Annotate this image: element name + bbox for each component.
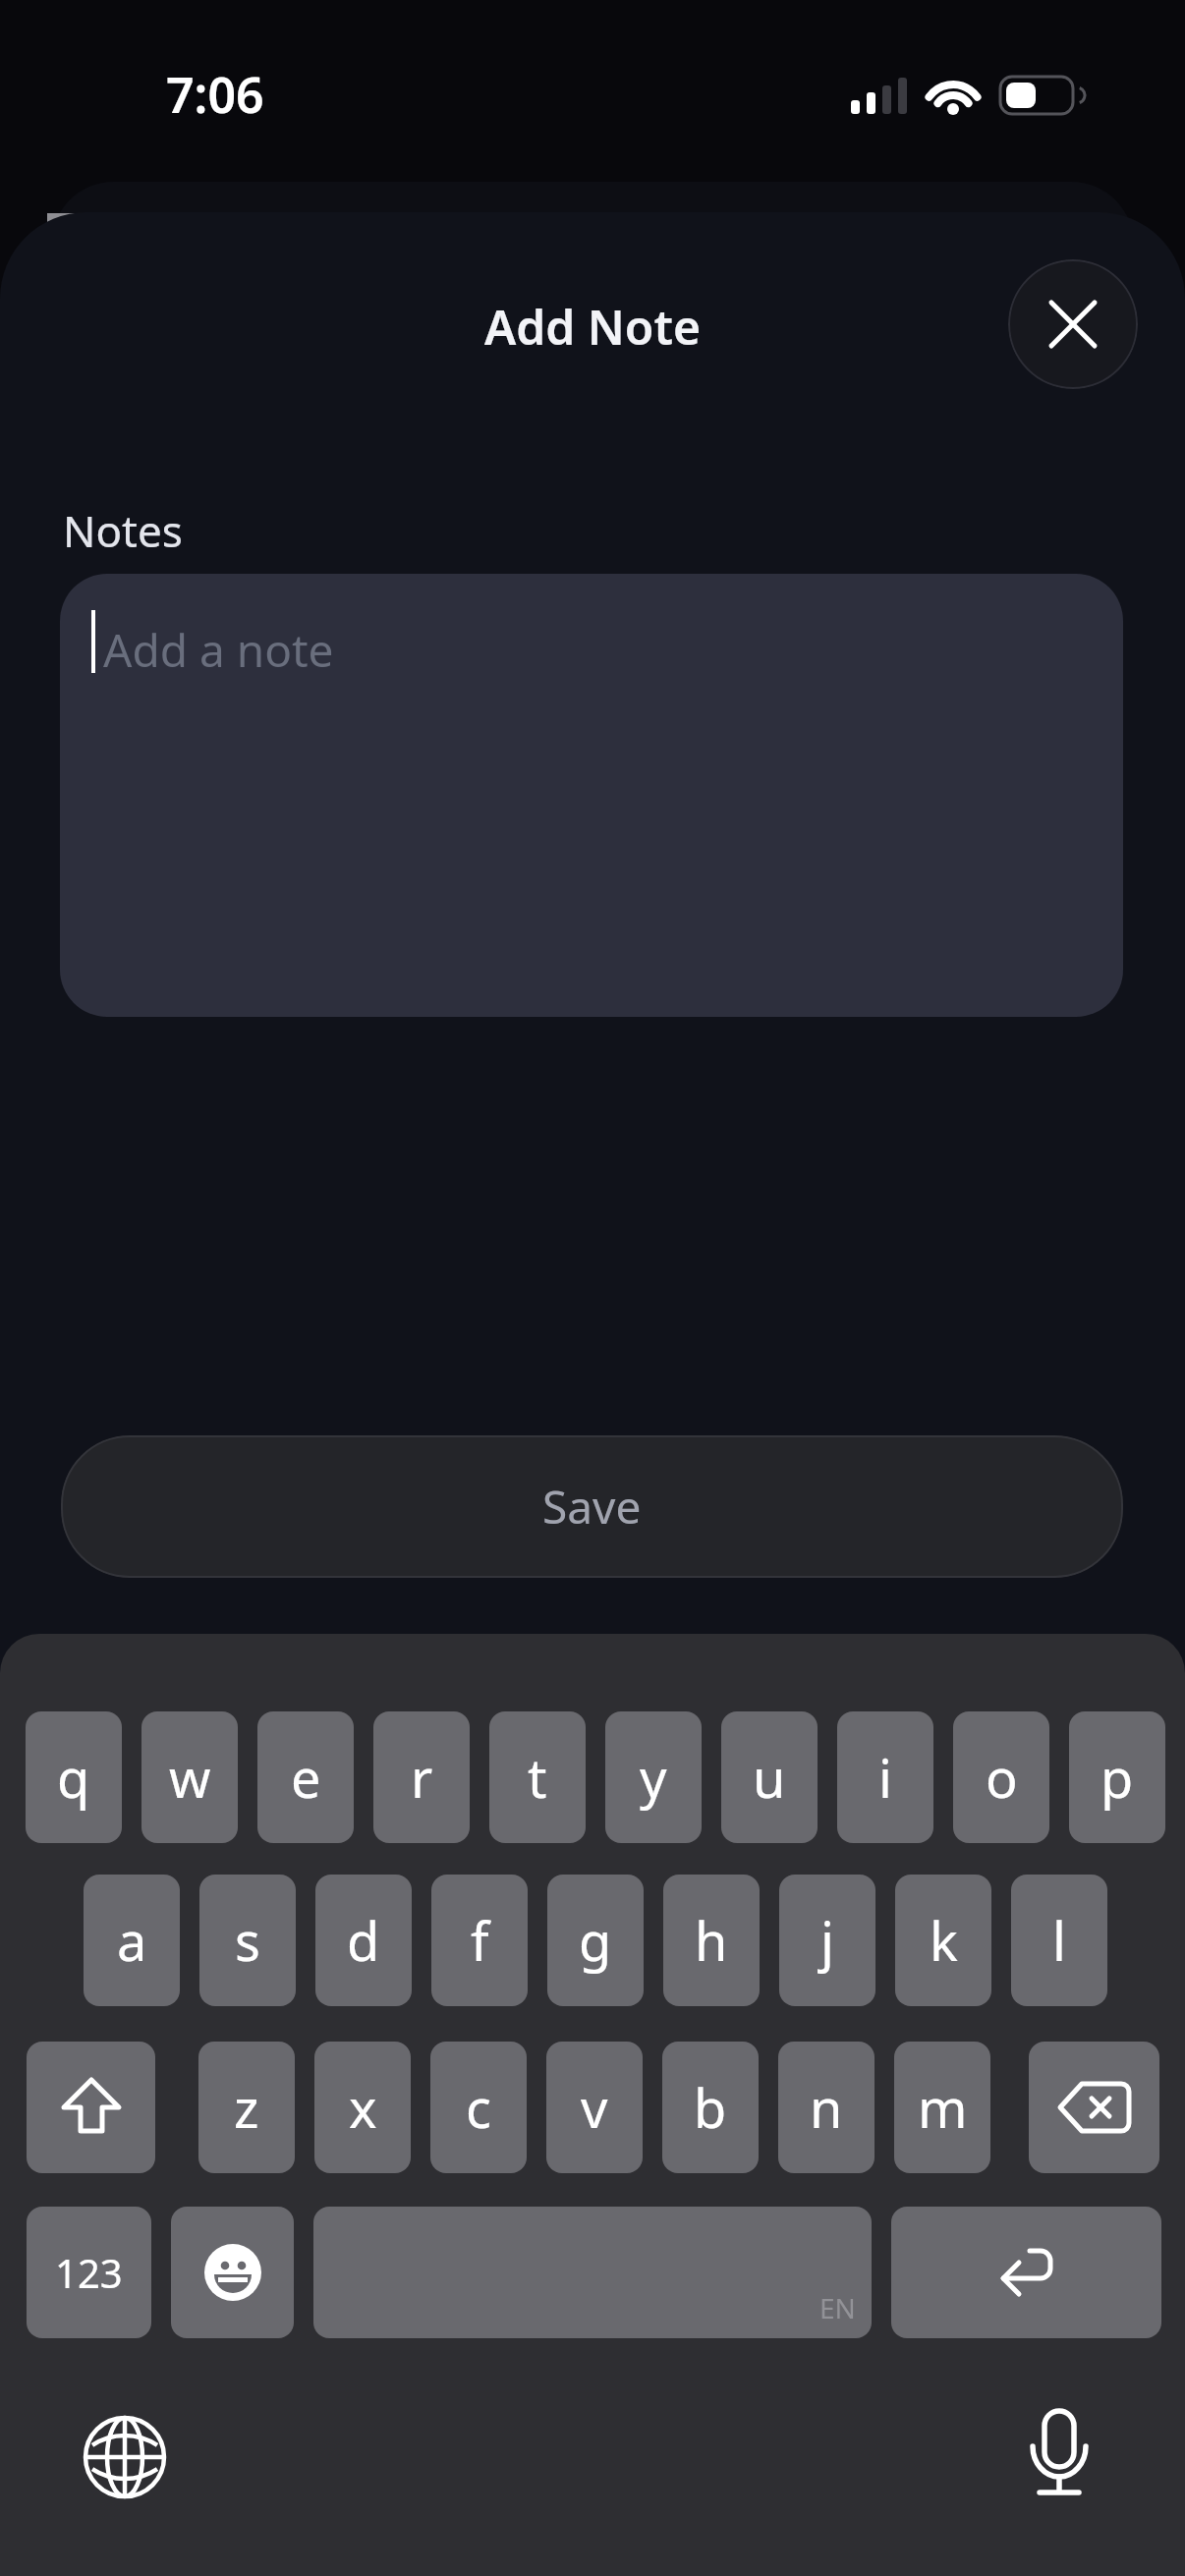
button[interactable]: g [547,1875,644,2006]
staticText: v [581,2071,608,2144]
button[interactable]: r [373,1711,470,1843]
staticText: b [694,2071,727,2144]
staticText: p [1100,1741,1134,1814]
staticText: o [986,1741,1018,1814]
button[interactable]: m [894,2042,990,2173]
button[interactable]: EN [313,2207,872,2338]
staticText: n [810,2071,843,2144]
staticText: j [820,1904,834,1977]
button[interactable]: y [605,1711,702,1843]
button[interactable] [66,2398,184,2516]
staticText: Notes [63,501,183,560]
button[interactable]: q [26,1711,122,1843]
staticText: i [878,1741,892,1814]
staticText: Save [542,1476,642,1538]
button[interactable]: f [431,1875,528,2006]
button[interactable]: j [779,1875,875,2006]
button[interactable]: i [837,1711,933,1843]
button[interactable]: s [199,1875,296,2006]
button[interactable]: 123 [27,2207,151,2338]
button[interactable]: w [141,1711,238,1843]
staticText: c [466,2071,491,2144]
staticText: 7:06 [166,61,264,128]
button[interactable]: v [546,2042,643,2173]
button[interactable]: z [198,2042,295,2173]
button[interactable]: n [778,2042,875,2173]
staticText: Add a note [103,619,334,681]
staticText: y [640,1741,667,1814]
staticText: EN [819,2289,856,2326]
button[interactable]: p [1069,1711,1165,1843]
button[interactable]: t [489,1711,586,1843]
staticText: r [411,1741,433,1814]
staticText: w [169,1741,211,1814]
staticText: d [347,1904,380,1977]
staticText: z [234,2071,259,2144]
staticText: h [695,1904,728,1977]
staticText: Add Note [0,295,1185,359]
staticText: a [117,1904,147,1977]
button[interactable]: Save [61,1435,1123,1578]
button[interactable] [27,2042,155,2173]
button[interactable] [1008,259,1138,389]
staticText: g [579,1904,612,1977]
staticText: u [753,1741,786,1814]
staticText: m [918,2071,968,2144]
button[interactable]: Add a note [60,574,1123,1017]
staticText: t [528,1741,547,1814]
button[interactable]: x [314,2042,411,2173]
button[interactable] [1029,2042,1159,2173]
button[interactable]: k [895,1875,991,2006]
button[interactable] [1000,2394,1118,2512]
staticText: s [235,1904,260,1977]
button[interactable]: l [1011,1875,1107,2006]
staticText: k [930,1904,958,1977]
button[interactable]: d [315,1875,412,2006]
button[interactable]: c [430,2042,527,2173]
button[interactable]: a [84,1875,180,2006]
staticText: l [1052,1904,1066,1977]
button[interactable]: u [721,1711,818,1843]
button[interactable]: o [953,1711,1049,1843]
button[interactable]: e [257,1711,354,1843]
button[interactable]: h [663,1875,760,2006]
button[interactable]: b [662,2042,759,2173]
staticText: x [349,2071,377,2144]
staticText: f [471,1904,489,1977]
staticText: q [57,1741,90,1814]
button[interactable] [171,2207,294,2338]
staticText: e [291,1741,321,1814]
staticText: 123 [55,2246,123,2299]
button[interactable] [891,2207,1161,2338]
